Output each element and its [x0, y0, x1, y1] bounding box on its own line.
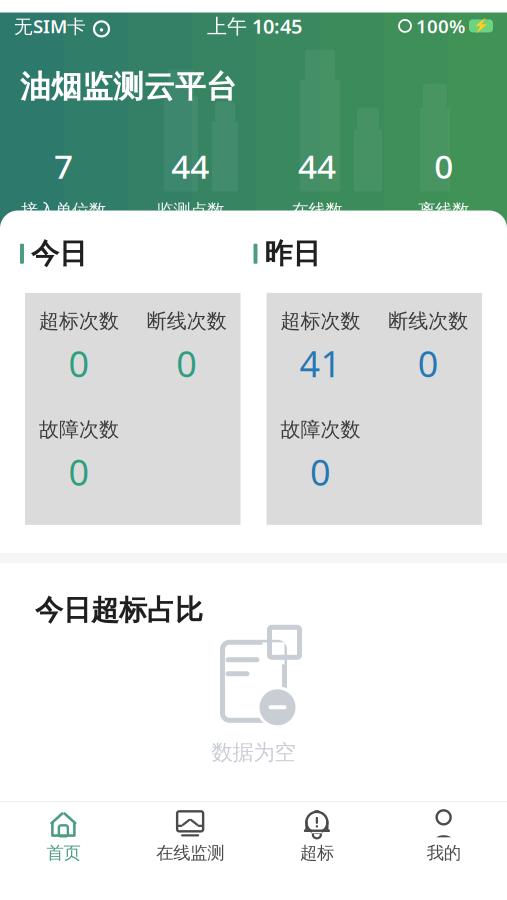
staticText: 故障次数	[39, 417, 119, 442]
staticText: 今日	[31, 236, 87, 271]
staticText: 上午 10:45	[207, 13, 302, 39]
staticText: ⚡	[472, 18, 489, 33]
staticText: 7	[54, 144, 73, 188]
staticText: 油烟监测云平台	[20, 68, 237, 106]
staticText: 0	[176, 339, 197, 387]
staticText: 0	[418, 339, 439, 387]
staticText: 监测点数	[156, 200, 224, 221]
staticText: 超标次数	[280, 309, 360, 333]
staticText: 0	[310, 448, 331, 496]
staticText: 超标次数	[39, 309, 119, 333]
staticText: 断线次数	[388, 309, 468, 333]
staticText: 41	[299, 339, 341, 387]
staticText: 断线次数	[147, 309, 227, 333]
staticText: 在线数	[291, 200, 342, 221]
staticText: 在线监测	[156, 842, 224, 864]
button[interactable]: 我的	[380, 802, 507, 870]
staticText: 44	[171, 144, 209, 188]
staticText: 100%	[416, 13, 465, 38]
staticText: 0	[68, 448, 89, 496]
staticText: 首页	[46, 842, 80, 864]
staticText: 我的	[427, 842, 461, 864]
staticText: 无SIM卡	[14, 13, 86, 38]
staticText: 数据为空	[211, 739, 295, 765]
button[interactable]: 首页	[0, 802, 127, 870]
button[interactable]: 超标	[253, 802, 380, 870]
staticText: 0	[434, 144, 453, 188]
staticText: 昨日	[264, 236, 320, 271]
staticText: 故障次数	[280, 417, 360, 442]
staticText: 离线数	[418, 200, 469, 221]
staticText: 接入单位数	[21, 200, 106, 221]
button[interactable]: 在线监测	[127, 802, 254, 870]
staticText: 0	[68, 339, 89, 387]
staticText: 超标	[300, 842, 334, 864]
staticText: 今日超标占比	[35, 593, 203, 627]
staticText: 44	[298, 144, 336, 188]
